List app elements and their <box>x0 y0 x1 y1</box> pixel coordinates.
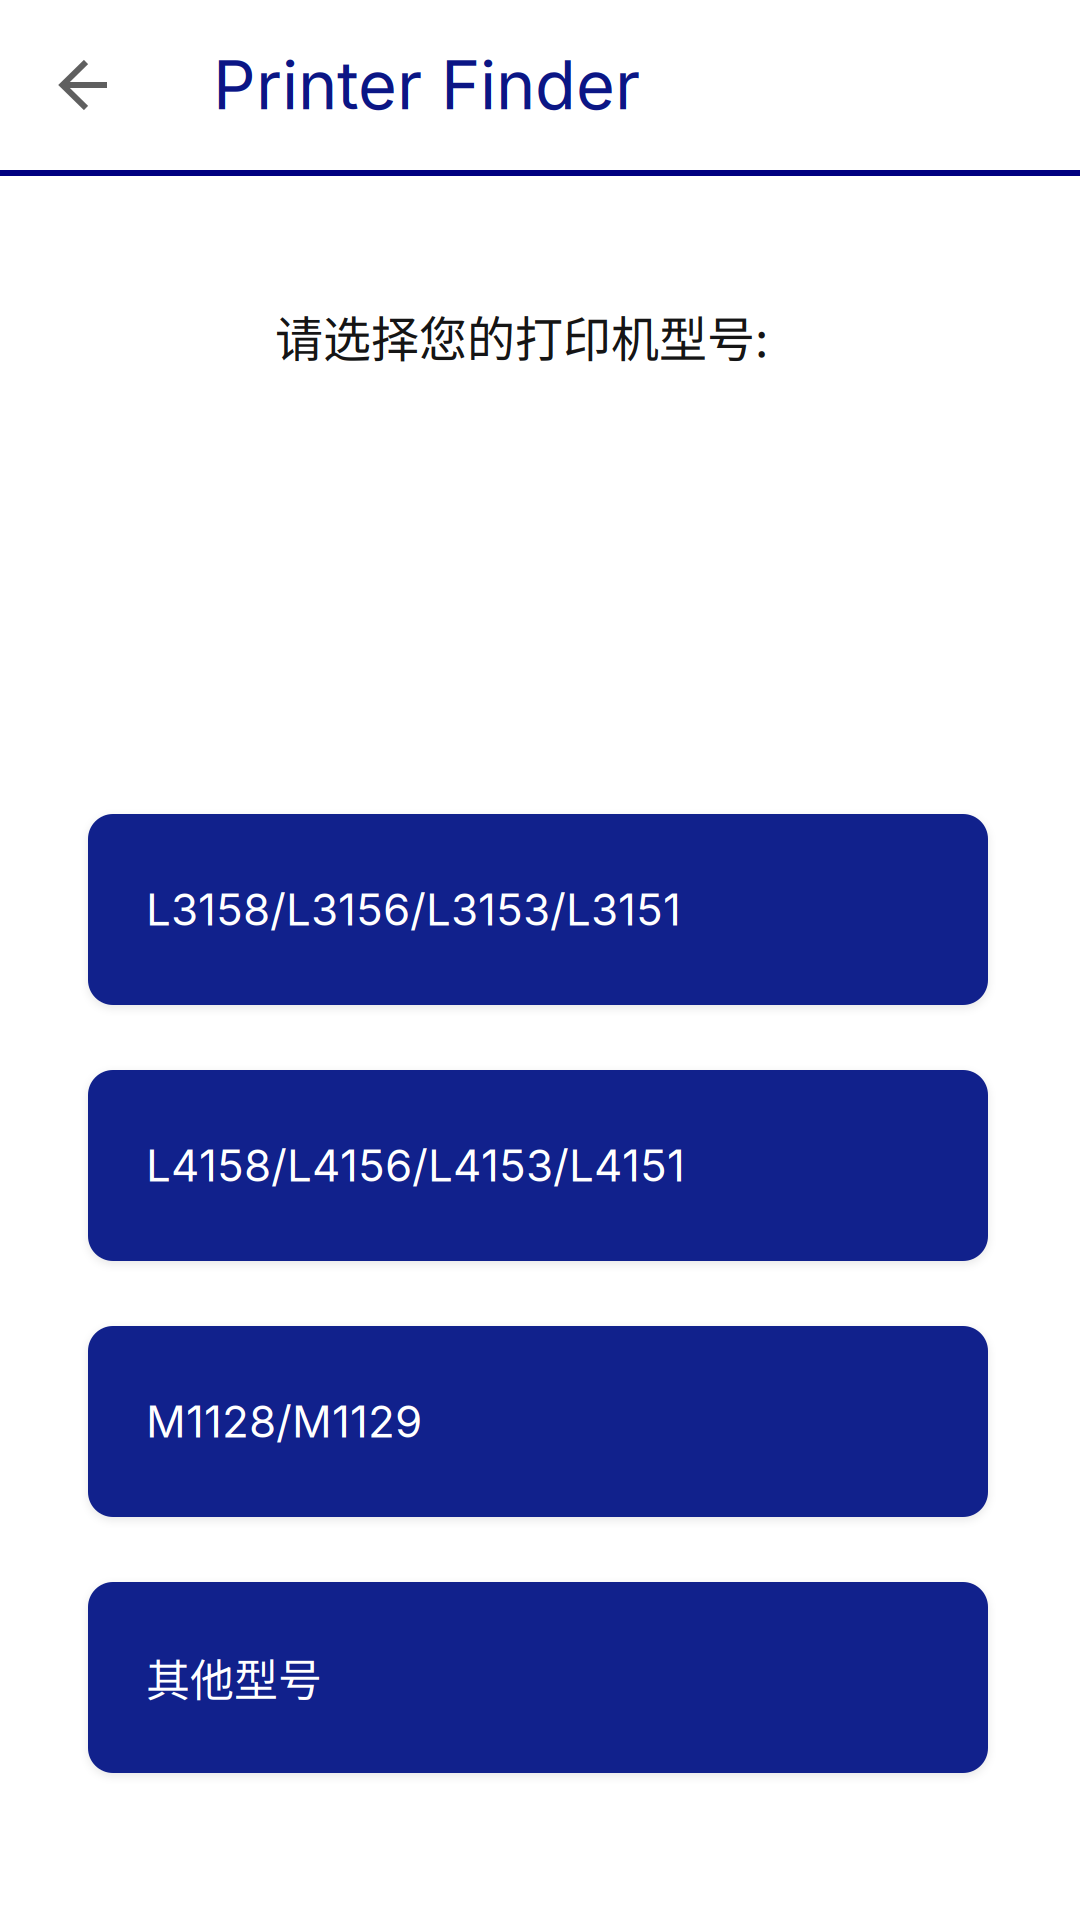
staticText: L3158/L3156/L3153/L3151 <box>146 883 681 936</box>
staticText: L4158/L4156/L4153/L4151 <box>146 1139 685 1192</box>
button[interactable]: L3158/L3156/L3153/L3151 <box>88 814 988 1005</box>
button[interactable]: L4158/L4156/L4153/L4151 <box>88 1070 988 1261</box>
staticText: Printer Finder <box>213 45 640 125</box>
staticText: 其他型号 <box>146 1646 322 1709</box>
staticText: 请选择您的打印机型号: <box>275 301 768 370</box>
button[interactable]: Back <box>33 15 137 155</box>
button[interactable]: 其他型号 <box>88 1582 988 1773</box>
staticText: M1128/M1129 <box>146 1395 422 1448</box>
button[interactable]: M1128/M1129 <box>88 1326 988 1517</box>
